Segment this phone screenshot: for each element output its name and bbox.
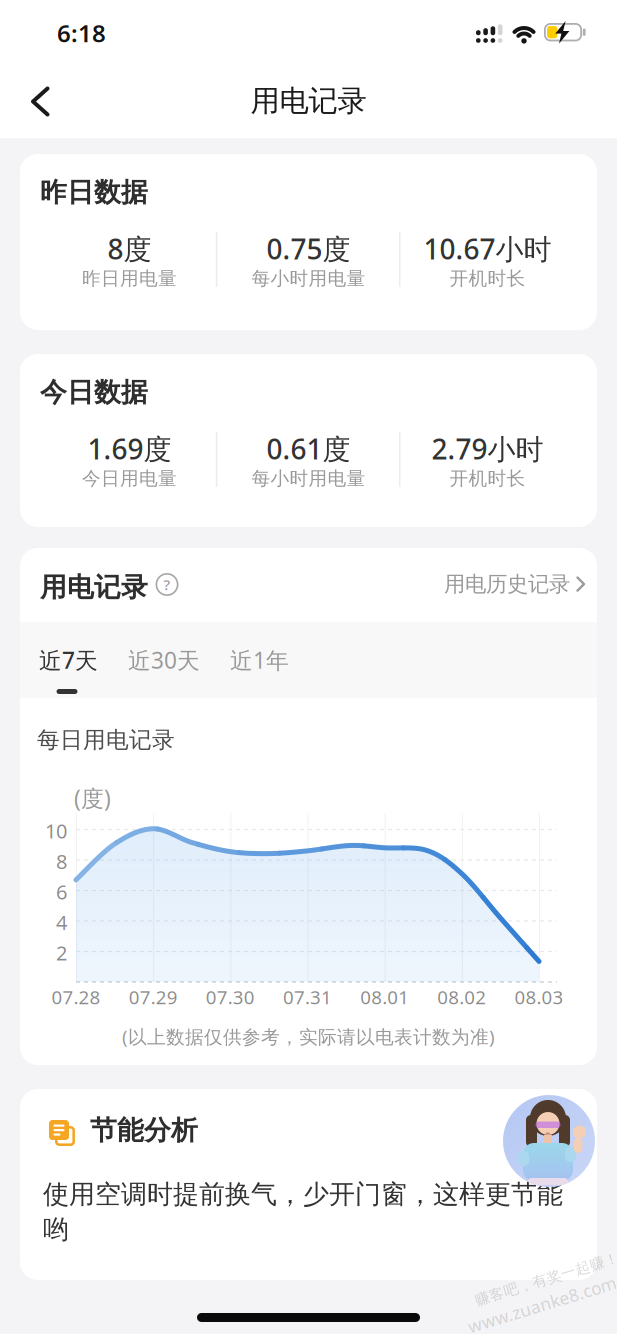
staticText: ? <box>163 575 170 594</box>
staticText: 赚客吧，有奖一起赚！ <box>472 1270 617 1288</box>
staticText: 08.02 <box>437 984 486 1009</box>
staticText: 8 <box>56 848 67 875</box>
staticText: 近30天 <box>128 645 200 675</box>
staticText: 每小时用电量 <box>251 267 365 290</box>
staticText: 07.28 <box>51 984 100 1009</box>
button[interactable]: 近7天 <box>39 645 98 675</box>
staticText: 用电历史记录 <box>444 571 570 597</box>
button[interactable]: 近30天 <box>128 645 200 675</box>
staticText: 昨日用电量 <box>82 267 177 290</box>
staticText: 6:18 <box>57 17 106 49</box>
staticText: 0.75度 <box>266 230 350 267</box>
staticText: 2 <box>56 939 67 966</box>
staticText: 07.29 <box>129 984 178 1009</box>
staticText: 08.01 <box>360 984 409 1009</box>
staticText: www.zuanke8.com <box>465 1293 617 1316</box>
staticText: 近7天 <box>39 645 98 675</box>
staticText: 今日数据 <box>40 376 148 409</box>
staticText: 每小时用电量 <box>251 467 365 490</box>
staticText: 0.61度 <box>266 430 350 467</box>
staticText: 6 <box>56 878 67 905</box>
staticText: 8度 <box>107 230 151 267</box>
staticText: 4 <box>56 909 67 936</box>
staticText: 昨日数据 <box>40 176 148 209</box>
staticText: 2.79小时 <box>431 430 543 467</box>
staticText: 近1年 <box>230 645 289 675</box>
button[interactable]: 用电历史记录 <box>386 571 586 597</box>
staticText: 开机时长 <box>449 467 525 490</box>
staticText: 1.69度 <box>87 430 171 467</box>
button[interactable]: 近1年 <box>230 645 289 675</box>
staticText: 使用空调时提前换气，少开门窗，这样更节能 哟 <box>43 1178 563 1246</box>
button[interactable]: 帮助 <box>152 569 182 599</box>
staticText: 10.67小时 <box>423 230 551 267</box>
staticText: 08.03 <box>514 984 563 1009</box>
staticText: 每日用电记录 <box>37 726 175 754</box>
button[interactable]: 智能助手 <box>503 1095 595 1187</box>
staticText: 节能分析 <box>90 1114 198 1147</box>
staticText: 07.31 <box>283 984 332 1009</box>
staticText: 07.30 <box>206 984 255 1009</box>
staticText: (以上数据仅供参考，实际请以电表计数为准) <box>122 1024 495 1049</box>
button[interactable]: Back <box>20 80 64 124</box>
staticText: 今日用电量 <box>82 467 177 490</box>
staticText: 10 <box>45 817 67 844</box>
staticText: (度) <box>74 783 111 813</box>
staticText: 用电记录 <box>250 83 366 119</box>
staticText: 开机时长 <box>449 267 525 290</box>
staticText: 用电记录 <box>40 571 148 604</box>
